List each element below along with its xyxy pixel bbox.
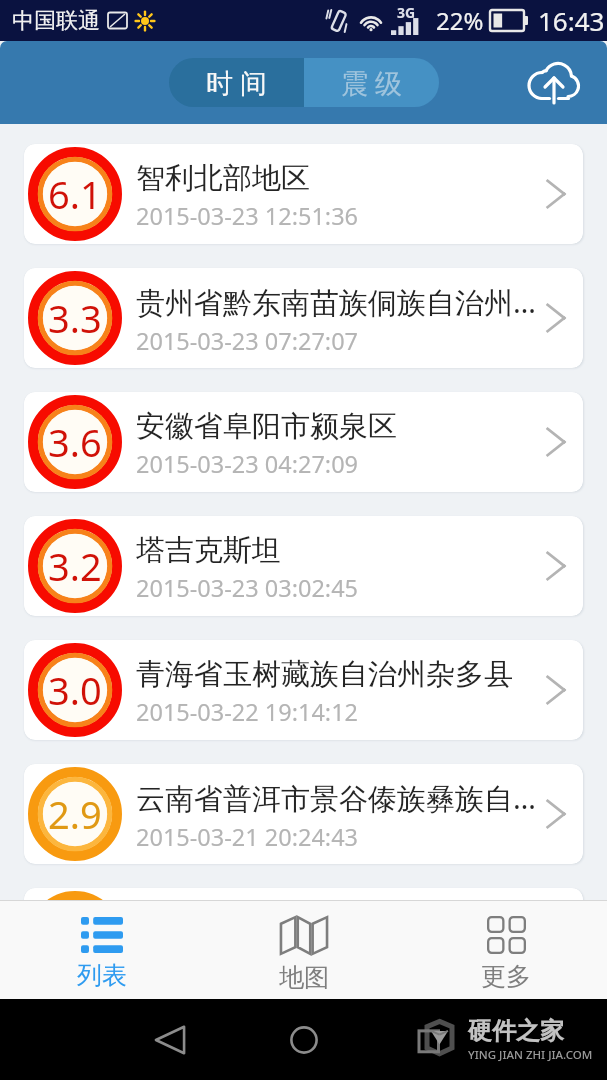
staticText: 安徽省阜阳市颍泉区 — [136, 408, 397, 445]
staticText: 2015-03-23 12:51:36 — [136, 200, 359, 232]
staticText: 2015-03-22 19:14:12 — [136, 696, 359, 728]
button[interactable]: Home — [280, 1016, 328, 1064]
staticText: 地图 — [279, 962, 329, 993]
staticText: 智利北部地区 — [136, 160, 310, 197]
staticText: 3.2 — [48, 540, 102, 592]
button[interactable]: 安徽省阜阳市颍泉区 — [24, 392, 583, 492]
button[interactable]: 智利北部地区 — [24, 144, 583, 244]
staticText: 2015-03-21 18:11:02 — [136, 944, 359, 976]
staticText: 3.6 — [48, 416, 102, 468]
staticText: 列表 — [77, 960, 127, 991]
staticText: 硬件之家 — [468, 1016, 564, 1046]
staticText: 塔吉克斯坦 — [136, 532, 281, 569]
staticText: 新疆维吾尔自治区 — [136, 904, 368, 941]
button[interactable]: 青海省玉树藏族自治州杂多县 — [24, 640, 583, 740]
staticText: 3.0 — [48, 664, 102, 716]
button[interactable]: 震 级 — [304, 58, 439, 107]
staticText: 2015-03-21 20:24:43 — [136, 821, 359, 853]
button[interactable]: 塔吉克斯坦 — [24, 516, 583, 616]
staticText: 更多 — [481, 961, 531, 992]
staticText: 16:43 — [538, 3, 605, 38]
button[interactable]: 新疆维吾尔自治区 — [24, 888, 583, 988]
staticText: 青海省玉树藏族自治州杂多县 — [136, 656, 513, 693]
staticText: 2015-03-23 07:27:07 — [136, 325, 359, 357]
staticText: 贵州省黔东南苗族侗族自治州… — [136, 282, 536, 322]
button[interactable]: Back — [146, 1016, 194, 1064]
button[interactable]: 更多 — [405, 901, 607, 999]
staticText: 3.3 — [48, 292, 102, 344]
staticText: 2015-03-23 04:27:09 — [136, 448, 359, 480]
staticText: 时 间 — [206, 64, 268, 101]
button[interactable]: Upload — [517, 46, 591, 120]
staticText: 3G — [397, 3, 416, 22]
staticText: 云南省普洱市景谷傣族彝族自… — [136, 778, 536, 818]
staticText: 22% — [436, 4, 484, 37]
button[interactable]: 列表 — [0, 901, 203, 999]
button[interactable]: 云南省普洱市景谷傣族彝族自… — [24, 764, 583, 864]
staticText: 震 级 — [341, 64, 403, 101]
staticText: 2.9 — [48, 788, 102, 840]
staticText: YING JIAN ZHI JIA.COM — [468, 1047, 593, 1063]
button[interactable]: 贵州省黔东南苗族侗族自治州… — [24, 268, 583, 368]
staticText: 6.1 — [48, 168, 102, 220]
staticText: 中国联通 — [12, 7, 100, 35]
staticText: 2.8 — [48, 912, 102, 964]
button[interactable]: 地图 — [203, 901, 405, 999]
button[interactable]: 时 间 — [169, 58, 304, 107]
staticText: 2015-03-23 03:02:45 — [136, 572, 359, 604]
